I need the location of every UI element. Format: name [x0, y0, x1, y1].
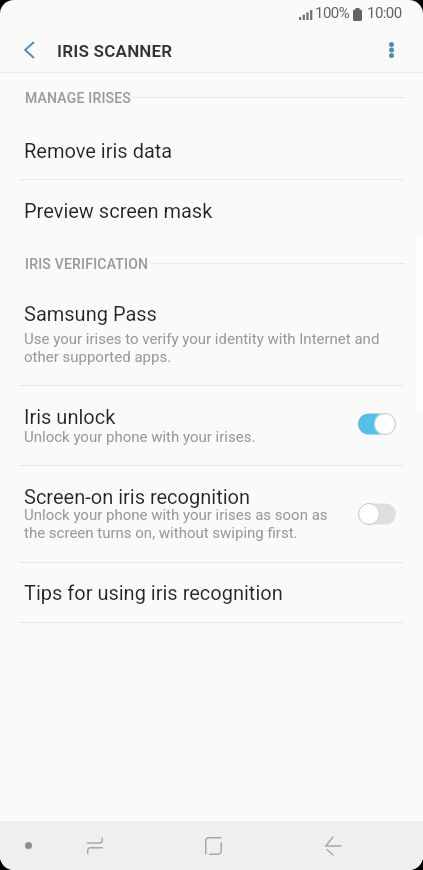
staticText: MANAGE IRISES	[25, 90, 132, 106]
button[interactable]: Navigate up	[6, 27, 52, 73]
staticText: Use your irises to verify your identity …	[24, 330, 380, 366]
button[interactable]	[0, 288, 423, 385]
button[interactable]: More options	[368, 27, 414, 73]
staticText: IRIS VERIFICATION	[25, 256, 149, 272]
button[interactable]: Off	[358, 503, 396, 525]
staticText: Preview screen mask	[24, 199, 213, 222]
staticText: Unlock your phone with your irises.	[24, 428, 256, 446]
button[interactable]: Show or hide the Navigation bar	[0, 821, 56, 870]
button[interactable]	[0, 386, 423, 465]
button[interactable]: Home	[165, 821, 262, 870]
button[interactable]	[0, 466, 423, 562]
staticText: Tips for using iris recognition	[24, 581, 283, 604]
staticText: IRIS SCANNER	[57, 41, 173, 61]
staticText: Unlock your phone with your irises as so…	[24, 506, 328, 542]
staticText: Screen-on iris recognition	[24, 485, 250, 508]
staticText: Iris unlock	[24, 405, 116, 428]
button[interactable]: Recent apps	[50, 821, 140, 870]
button[interactable]: Back	[285, 821, 380, 870]
staticText: Samsung Pass	[24, 302, 157, 325]
staticText: Remove iris data	[24, 139, 173, 162]
button[interactable]	[0, 563, 423, 622]
staticText: 10:00	[367, 4, 402, 22]
button[interactable]: On	[358, 413, 396, 435]
button[interactable]	[0, 180, 423, 239]
staticText: 100%	[315, 4, 350, 22]
button[interactable]	[0, 73, 423, 179]
